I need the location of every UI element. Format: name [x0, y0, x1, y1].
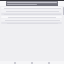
button[interactable]: [1, 7, 62, 9]
button[interactable]: Home: [13, 61, 17, 64]
button[interactable]: Profile: [47, 61, 51, 64]
button[interactable]: [1, 19, 62, 21]
button[interactable]: [1, 13, 62, 15]
button[interactable]: [1, 16, 62, 18]
button[interactable]: [6, 1, 58, 6]
button[interactable]: [1, 22, 62, 24]
button[interactable]: Search: [30, 61, 34, 64]
button[interactable]: [1, 10, 62, 12]
